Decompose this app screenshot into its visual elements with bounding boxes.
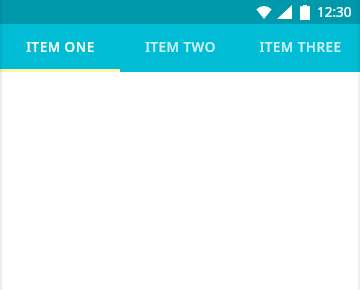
button[interactable]: ITEM THREE: [240, 24, 360, 72]
staticText: ITEM THREE: [259, 38, 342, 56]
other: Mobile signal: [277, 5, 292, 19]
staticText: 12:30: [317, 3, 352, 21]
button[interactable]: ITEM ONE: [0, 24, 120, 72]
other: Wi-Fi signal: [256, 5, 272, 19]
staticText: ITEM ONE: [26, 38, 95, 56]
staticText: ITEM TWO: [145, 38, 216, 56]
button[interactable]: ITEM TWO: [120, 24, 240, 72]
other: Battery full: [300, 5, 310, 20]
